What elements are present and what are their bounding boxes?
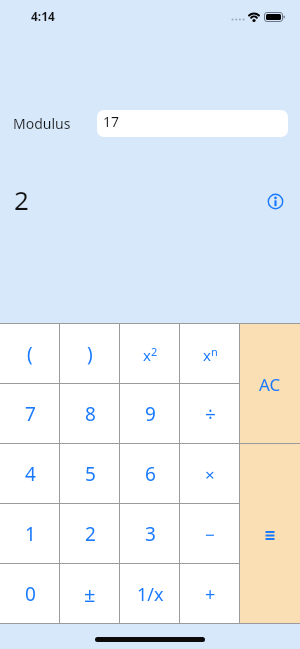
button[interactable]: ÷	[180, 384, 240, 444]
button[interactable]: +	[180, 564, 240, 624]
staticText: ×	[205, 463, 215, 486]
staticText: )	[87, 341, 93, 367]
button[interactable]: x2	[120, 324, 180, 384]
button[interactable]: −	[180, 504, 240, 564]
staticText: 4	[25, 461, 36, 487]
button[interactable]: 9	[120, 384, 180, 444]
button[interactable]: )	[60, 324, 120, 384]
button[interactable]: 1/x	[120, 564, 180, 624]
button[interactable]: 6	[120, 444, 180, 504]
button[interactable]: 8	[60, 384, 120, 444]
staticText: 9	[145, 401, 156, 427]
button[interactable]: (	[0, 324, 60, 384]
staticText: −	[205, 523, 215, 546]
button[interactable]: 5	[60, 444, 120, 504]
button[interactable]: 3	[120, 504, 180, 564]
staticText: 2	[14, 182, 29, 217]
staticText: ÷	[205, 401, 216, 427]
staticText: 3	[145, 521, 156, 547]
button[interactable]	[240, 444, 300, 624]
button[interactable]: ×	[180, 444, 240, 504]
staticText: Modulus	[13, 114, 71, 133]
button[interactable]: 2	[60, 504, 120, 564]
staticText: ±	[84, 581, 96, 608]
button[interactable]: ±	[60, 564, 120, 624]
button[interactable]: xn	[180, 324, 240, 384]
staticText: 8	[85, 401, 96, 427]
button[interactable]: 0	[0, 564, 60, 624]
staticText: xn	[203, 344, 218, 365]
staticText: 6	[145, 461, 156, 487]
button[interactable]: 7	[0, 384, 60, 444]
staticText: 5	[85, 461, 96, 487]
staticText: 1	[25, 521, 36, 547]
staticText: AC	[259, 373, 281, 396]
staticText: x2	[143, 344, 158, 365]
button[interactable]: 17	[97, 110, 288, 137]
staticText: 7	[25, 401, 36, 427]
staticText: 1/x	[137, 582, 164, 607]
staticText: 2	[85, 521, 96, 547]
button[interactable]: 1	[0, 504, 60, 564]
staticText: 17	[103, 112, 120, 131]
staticText: (	[27, 341, 33, 367]
button[interactable]	[263, 189, 287, 213]
button[interactable]: 4	[0, 444, 60, 504]
staticText: 0	[25, 581, 36, 607]
staticText: 4:14	[31, 8, 55, 24]
staticText: +	[205, 582, 216, 607]
button[interactable]: AC	[240, 324, 300, 444]
